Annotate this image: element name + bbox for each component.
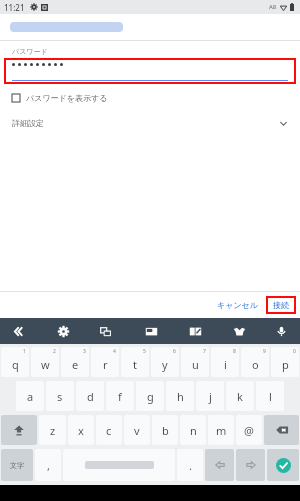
staticText: 5 <box>143 348 146 355</box>
button[interactable]: m <box>208 415 234 445</box>
button[interactable]: Switch input mode <box>1 449 33 481</box>
staticText: y <box>162 357 168 372</box>
button[interactable]: h <box>166 381 194 411</box>
staticText: 1 <box>23 348 26 355</box>
button[interactable]: . <box>177 449 203 481</box>
button[interactable]: v <box>124 415 150 445</box>
staticText: パスワード <box>12 47 48 56</box>
button[interactable]: Settings <box>54 322 72 340</box>
staticText: o <box>252 357 259 372</box>
staticText: u <box>192 357 199 372</box>
button[interactable]: Backspace <box>264 415 299 445</box>
staticText: r <box>103 357 108 372</box>
staticText: t <box>133 357 137 372</box>
button[interactable]: Shift <box>1 415 37 445</box>
staticText: c <box>106 423 112 438</box>
button[interactable]: @ <box>236 415 262 445</box>
staticText: 3 <box>83 348 86 355</box>
button[interactable]: z <box>39 415 66 445</box>
button[interactable]: n <box>180 415 206 445</box>
button[interactable]: 9 <box>241 347 269 377</box>
button[interactable]: c <box>96 415 122 445</box>
staticText: d <box>87 389 94 404</box>
button[interactable]: 1 <box>1 347 29 377</box>
staticText: q <box>12 357 19 372</box>
staticText: l <box>269 389 272 404</box>
button[interactable]: 2 <box>31 347 59 377</box>
staticText: 接続 <box>273 300 289 310</box>
staticText: a <box>27 389 34 404</box>
staticText: パスワードを表示する <box>26 93 108 103</box>
button[interactable]: 7 <box>181 347 209 377</box>
button[interactable]: j <box>196 381 224 411</box>
staticText: 7 <box>203 348 206 355</box>
staticText: e <box>72 357 79 372</box>
staticText: n <box>190 423 197 438</box>
button[interactable]: x <box>68 415 94 445</box>
button[interactable]: , <box>35 449 61 481</box>
staticText: k <box>237 389 243 404</box>
button[interactable]: 8 <box>211 347 239 377</box>
button[interactable]: 接続 <box>266 296 296 314</box>
staticText: w <box>41 357 50 372</box>
staticText: A8 <box>269 3 277 11</box>
staticText: h <box>177 389 184 404</box>
button[interactable]: Voice input <box>272 322 290 340</box>
staticText: f <box>118 389 122 404</box>
staticText: j <box>209 389 212 404</box>
button[interactable]: 4 <box>91 347 119 377</box>
button[interactable]: a <box>16 381 44 411</box>
button[interactable]: 0 <box>271 347 299 377</box>
button[interactable]: b <box>152 415 178 445</box>
staticText: m <box>216 423 227 438</box>
staticText: @ <box>244 423 254 438</box>
button[interactable]: Clipboard history <box>96 322 114 340</box>
staticText: p <box>282 357 289 372</box>
staticText: , <box>47 458 50 473</box>
button[interactable]: 詳細設定 <box>12 118 288 128</box>
staticText: 0 <box>293 348 296 355</box>
staticText: 2 <box>53 348 56 355</box>
button[interactable]: パスワードを表示する <box>12 93 300 103</box>
staticText: g <box>147 389 154 404</box>
staticText: 詳細設定 <box>12 118 44 128</box>
button[interactable]: f <box>106 381 134 411</box>
staticText: 8 <box>233 348 236 355</box>
staticText: s <box>57 389 63 404</box>
button[interactable]: 5 <box>121 347 149 377</box>
button[interactable]: Emoji <box>142 322 160 340</box>
button[interactable]: Stickers <box>230 322 248 340</box>
button[interactable]: Space <box>63 449 175 481</box>
staticText: 9 <box>263 348 266 355</box>
staticText: 4 <box>113 348 116 355</box>
button[interactable]: l <box>256 381 284 411</box>
staticText: 文字 <box>10 461 24 470</box>
button[interactable]: キャンセル <box>211 296 264 314</box>
staticText: 6 <box>173 348 176 355</box>
staticText: z <box>50 423 56 438</box>
staticText: . <box>189 458 192 473</box>
button[interactable]: d <box>76 381 104 411</box>
staticText: i <box>224 357 227 372</box>
staticText: v <box>134 423 140 438</box>
button[interactable]: Confirm <box>267 449 299 481</box>
button[interactable]: 6 <box>151 347 179 377</box>
button[interactable]: g <box>136 381 164 411</box>
staticText: 11:21 <box>4 2 25 13</box>
button[interactable]: Move cursor left <box>205 449 234 481</box>
button[interactable]: Notes <box>186 322 204 340</box>
staticText: b <box>162 423 169 438</box>
button[interactable]: s <box>46 381 74 411</box>
button[interactable]: Collapse keyboard <box>8 322 26 340</box>
button[interactable]: Move cursor right <box>236 449 265 481</box>
staticText: x <box>78 423 84 438</box>
staticText: キャンセル <box>217 300 258 310</box>
button[interactable]: k <box>226 381 254 411</box>
button[interactable]: 3 <box>61 347 89 377</box>
